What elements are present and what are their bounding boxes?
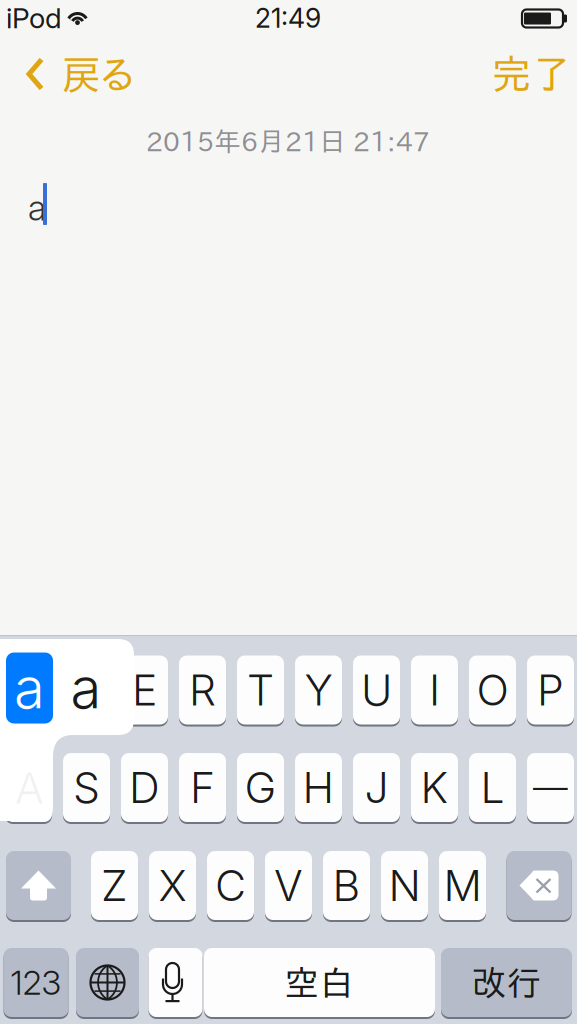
button[interactable]: Q bbox=[5, 655, 52, 724]
button[interactable]: A bbox=[5, 753, 52, 822]
staticText: A bbox=[15, 762, 44, 814]
button[interactable]: D bbox=[121, 753, 168, 822]
button[interactable]: P bbox=[527, 655, 574, 724]
staticText: I bbox=[429, 664, 440, 716]
staticText: U bbox=[361, 664, 392, 716]
staticText: Q bbox=[12, 664, 44, 716]
staticText: X bbox=[158, 860, 186, 911]
button[interactable]: R bbox=[179, 655, 226, 724]
button[interactable]: Dictation bbox=[148, 948, 202, 1017]
staticText: F bbox=[190, 762, 215, 813]
staticText: P bbox=[537, 664, 564, 716]
staticText: 123 bbox=[10, 962, 61, 1003]
staticText: V bbox=[274, 860, 303, 911]
button[interactable]: I bbox=[411, 655, 458, 724]
button[interactable]: 改行 bbox=[441, 948, 572, 1017]
button[interactable]: G bbox=[237, 753, 284, 822]
staticText: W bbox=[66, 664, 107, 716]
button[interactable]: K bbox=[411, 753, 458, 822]
button[interactable]: X bbox=[149, 851, 196, 920]
staticText: iPod bbox=[6, 1, 62, 35]
button[interactable]: Next keyboard bbox=[76, 948, 139, 1017]
button[interactable]: B bbox=[323, 851, 370, 920]
staticText: 21:49 bbox=[255, 2, 321, 34]
button[interactable]: C bbox=[207, 851, 254, 920]
button[interactable]: E bbox=[121, 655, 168, 724]
button[interactable]: F bbox=[179, 753, 226, 822]
staticText: R bbox=[189, 664, 216, 716]
staticText: L bbox=[480, 762, 504, 813]
button[interactable]: S bbox=[63, 753, 110, 822]
button[interactable]: Shift bbox=[6, 851, 71, 920]
staticText: Z bbox=[101, 860, 128, 911]
staticText: G bbox=[244, 762, 276, 813]
staticText: M bbox=[443, 860, 481, 911]
staticText: H bbox=[302, 762, 334, 813]
staticText: A bbox=[14, 762, 43, 813]
button[interactable]: — bbox=[527, 753, 574, 822]
staticText: — bbox=[533, 766, 568, 808]
button[interactable]: 完了 bbox=[477, 47, 577, 99]
button[interactable]: O bbox=[469, 655, 516, 724]
button[interactable]: J bbox=[353, 753, 400, 822]
staticText: E bbox=[132, 664, 157, 716]
staticText: 改行 bbox=[471, 965, 541, 1000]
button[interactable]: H bbox=[295, 753, 342, 822]
staticText: 空白 bbox=[284, 965, 354, 1000]
staticText: O bbox=[476, 664, 508, 716]
staticText: Y bbox=[304, 664, 332, 716]
button[interactable]: Z bbox=[91, 851, 138, 920]
button[interactable]: Delete bbox=[506, 851, 571, 920]
staticText: T bbox=[247, 664, 274, 716]
button[interactable]: T bbox=[237, 655, 284, 724]
button[interactable]: U bbox=[353, 655, 400, 724]
staticText: 2015年6月21日 21:47 bbox=[146, 128, 430, 154]
staticText: B bbox=[332, 860, 360, 911]
staticText: a bbox=[14, 654, 45, 722]
staticText: N bbox=[388, 860, 420, 911]
staticText: a bbox=[28, 187, 46, 229]
button[interactable]: L bbox=[469, 753, 516, 822]
button[interactable]: 戻る bbox=[4, 48, 148, 100]
staticText: C bbox=[215, 860, 246, 911]
button[interactable]: 空白 bbox=[204, 948, 435, 1017]
button[interactable]: 123 bbox=[3, 948, 68, 1017]
staticText: J bbox=[364, 762, 388, 813]
button[interactable]: N bbox=[381, 851, 428, 920]
staticText: 戻る bbox=[61, 54, 134, 94]
staticText: a bbox=[70, 654, 101, 722]
button[interactable]: Y bbox=[295, 655, 342, 724]
button[interactable]: V bbox=[265, 851, 312, 920]
staticText: S bbox=[73, 762, 100, 813]
button[interactable]: M bbox=[439, 851, 486, 920]
staticText: 完了 bbox=[491, 53, 571, 93]
staticText: D bbox=[129, 762, 160, 813]
staticText: K bbox=[420, 762, 448, 813]
button[interactable]: W bbox=[63, 655, 110, 724]
